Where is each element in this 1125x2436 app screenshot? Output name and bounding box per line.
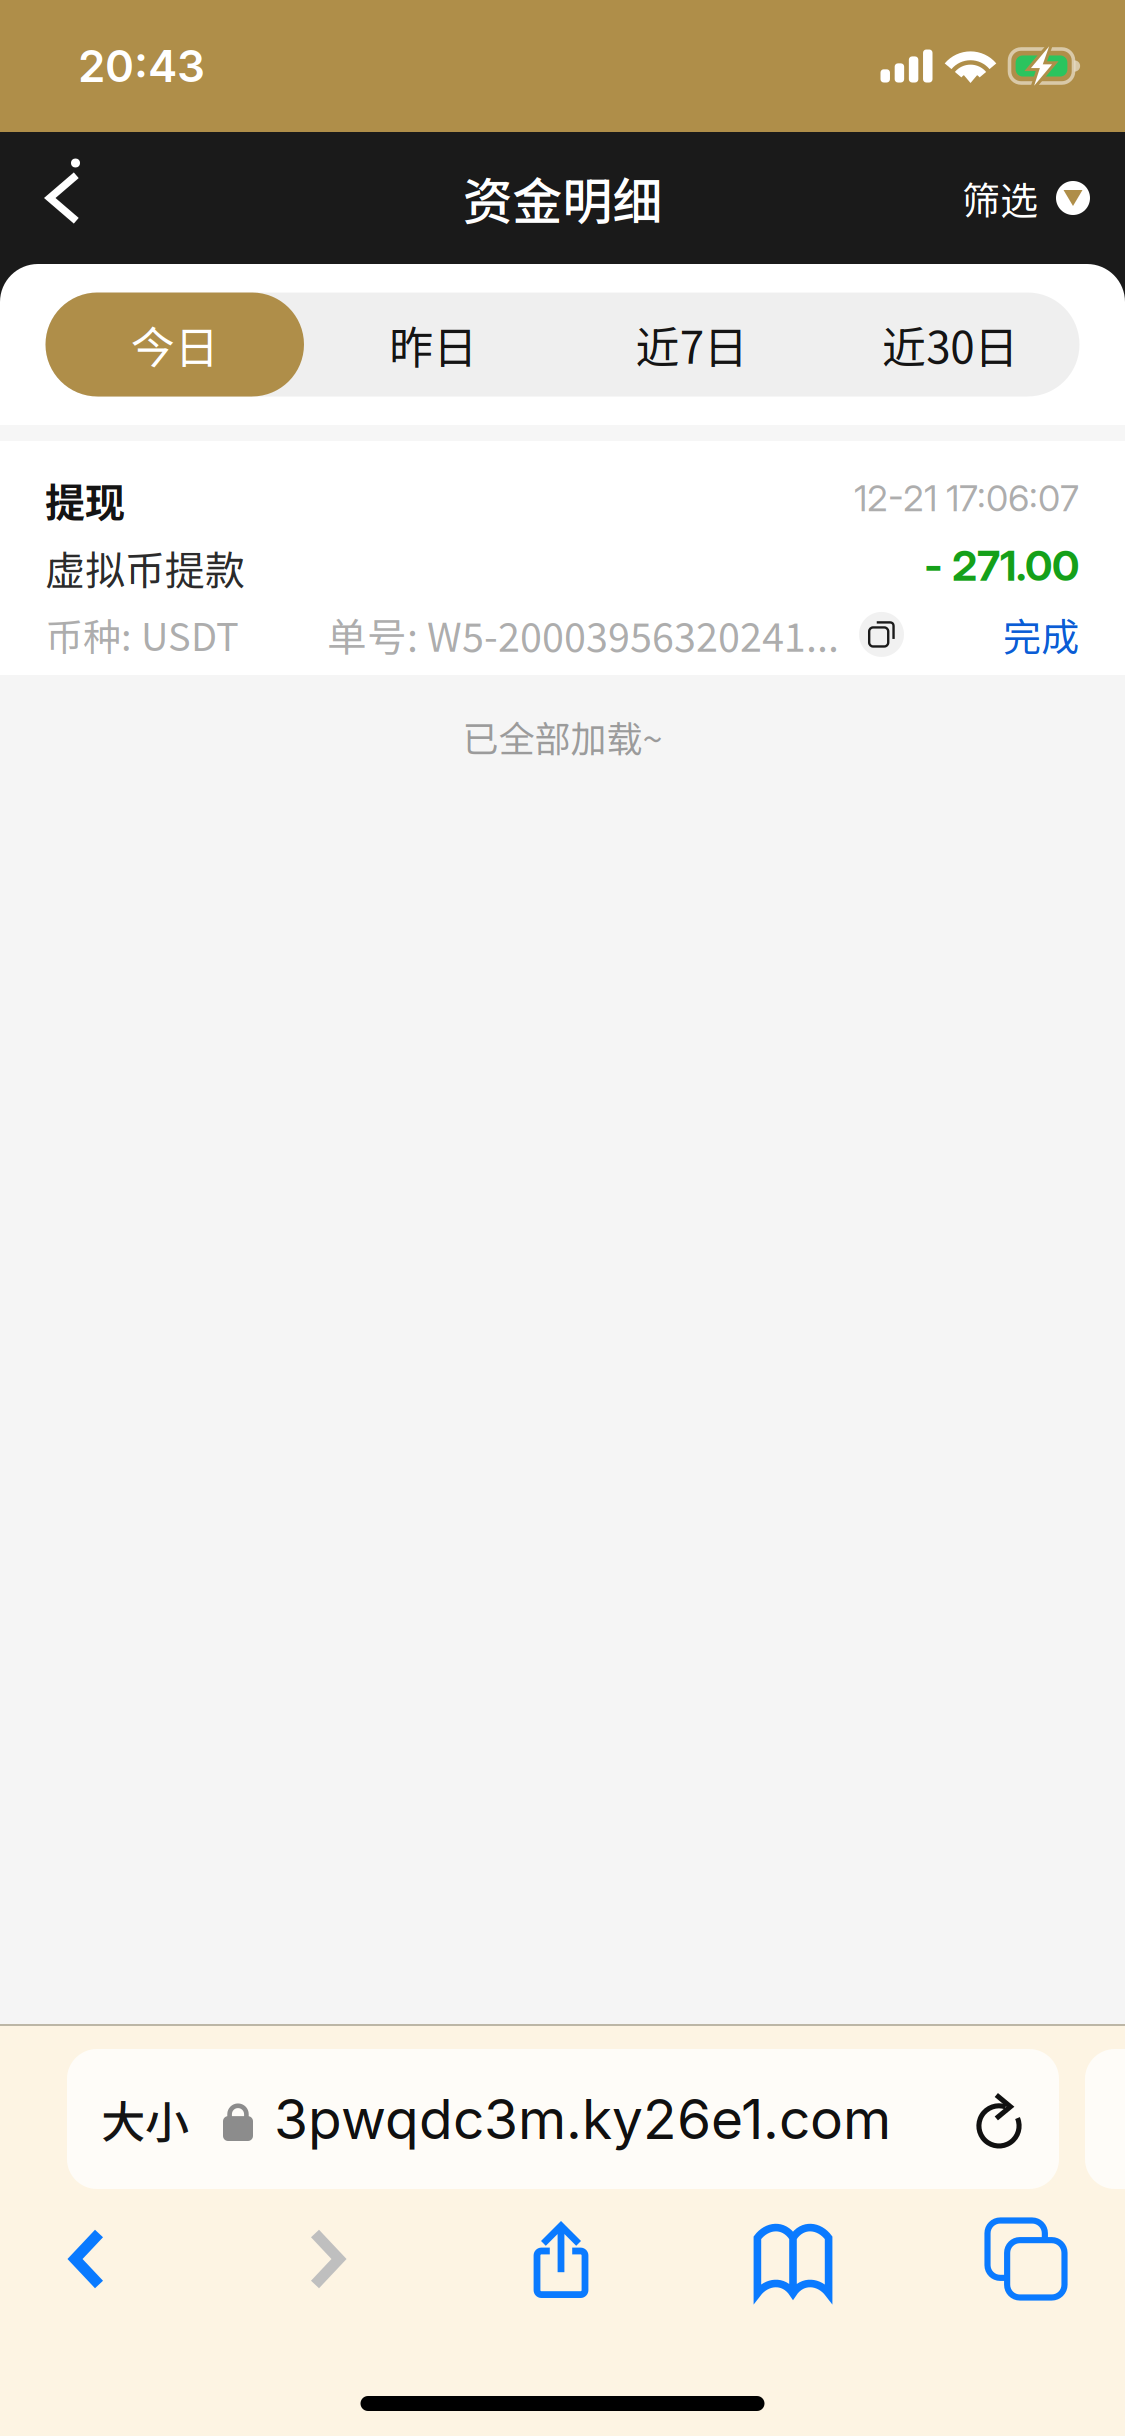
staticText: 已全部加载~ bbox=[462, 710, 662, 763]
staticText: 大小 bbox=[101, 2087, 189, 2151]
staticText: 完成 bbox=[1003, 607, 1079, 662]
button[interactable]: Forward bbox=[240, 2211, 414, 2307]
button[interactable]: 近30日 bbox=[821, 292, 1079, 396]
staticText: 单号: W5-20003956320241... bbox=[327, 606, 839, 663]
button[interactable]: 今日 bbox=[45, 292, 304, 396]
button[interactable]: Share bbox=[474, 2211, 648, 2307]
staticText: 20:43 bbox=[78, 39, 205, 93]
button[interactable]: Tabs bbox=[939, 2211, 1113, 2307]
staticText: 虚拟币提款 bbox=[45, 539, 245, 597]
button[interactable]: 大小 bbox=[67, 2049, 1059, 2189]
staticText: 近7日 bbox=[636, 313, 748, 376]
button[interactable]: 近7日 bbox=[562, 292, 821, 396]
staticText: 近30日 bbox=[882, 313, 1018, 376]
staticText: 资金明细 bbox=[462, 162, 662, 234]
button[interactable]: Back bbox=[0, 2211, 174, 2307]
button[interactable]: Bookmarks bbox=[706, 2211, 880, 2307]
staticText: - 271.00 bbox=[924, 540, 1079, 591]
button[interactable]: 筛选 bbox=[932, 136, 1125, 259]
button[interactable]: 返回 bbox=[0, 133, 120, 262]
staticText: 12-21 17:06:07 bbox=[854, 476, 1079, 520]
staticText: 3pwqdc3m.ky26e1.com bbox=[274, 2086, 891, 2152]
staticText: 提现 bbox=[45, 471, 125, 529]
staticText: 今日 bbox=[131, 313, 219, 376]
button[interactable]: 昨日 bbox=[304, 292, 562, 396]
staticText: 筛选 bbox=[962, 170, 1038, 225]
button[interactable]: 提现 bbox=[0, 441, 1125, 675]
staticText: 昨日 bbox=[389, 313, 477, 376]
staticText: 币种: USDT bbox=[45, 607, 239, 662]
